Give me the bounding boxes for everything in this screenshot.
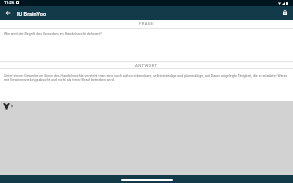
staticText: IU BrainYoo: [17, 11, 47, 18]
button[interactable]: Home: [121, 179, 173, 181]
button[interactable]: Filter: [2, 102, 11, 110]
button[interactable]: Lock: [279, 6, 293, 20]
staticText: ANTWORT: [135, 63, 158, 68]
staticText: FRAGE: [139, 21, 154, 26]
staticText: 11:26: [4, 0, 15, 5]
staticText: Unter einem Gewerbe im Sinne des Handels…: [4, 74, 290, 82]
staticText: Wie wird der Begriff des Gewerbes im Han…: [4, 32, 102, 36]
button[interactable]: Back: [0, 6, 16, 20]
